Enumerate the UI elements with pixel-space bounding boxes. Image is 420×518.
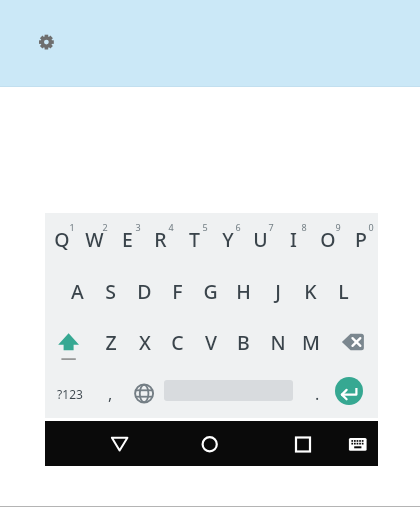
button[interactable]: I: [277, 217, 310, 261]
button[interactable]: [287, 430, 319, 458]
staticText: R: [154, 226, 167, 253]
staticText: J: [275, 278, 281, 305]
button[interactable]: O: [311, 217, 344, 261]
button[interactable]: A: [61, 265, 94, 317]
staticText: Z: [105, 329, 117, 356]
button[interactable]: ?123: [45, 368, 95, 420]
staticText: 5: [202, 221, 208, 233]
staticText: ,: [108, 383, 113, 405]
button[interactable]: W: [78, 217, 111, 261]
button[interactable]: Z: [94, 316, 127, 368]
staticText: T: [189, 226, 200, 253]
button[interactable]: D: [128, 265, 161, 317]
button[interactable]: [45, 316, 95, 368]
button[interactable]: M: [294, 316, 327, 368]
button[interactable]: [335, 377, 363, 405]
staticText: M: [302, 329, 320, 356]
staticText: A: [71, 278, 84, 305]
staticText: 2: [102, 221, 108, 233]
staticText: I: [290, 226, 297, 253]
button[interactable]: [327, 316, 377, 368]
staticText: 1: [69, 221, 75, 233]
staticText: U: [253, 226, 268, 253]
button[interactable]: S: [94, 265, 127, 317]
button[interactable]: J: [261, 265, 294, 317]
staticText: Q: [54, 226, 70, 253]
staticText: B: [237, 329, 250, 356]
button[interactable]: Y: [211, 217, 244, 261]
button[interactable]: P: [344, 217, 377, 261]
button[interactable]: X: [128, 316, 161, 368]
button[interactable]: [104, 430, 136, 458]
button[interactable]: B: [227, 316, 260, 368]
staticText: Y: [222, 226, 234, 253]
staticText: H: [236, 278, 251, 305]
button[interactable]: .: [298, 368, 336, 420]
button[interactable]: H: [227, 265, 260, 317]
button[interactable]: ,: [94, 368, 127, 420]
staticText: X: [139, 329, 151, 356]
button[interactable]: C: [161, 316, 194, 368]
button[interactable]: Q: [45, 217, 78, 261]
staticText: S: [105, 278, 116, 305]
staticText: G: [203, 278, 218, 305]
staticText: C: [171, 329, 184, 356]
staticText: ?123: [57, 386, 83, 402]
button[interactable]: K: [294, 265, 327, 317]
staticText: P: [355, 226, 367, 253]
staticText: W: [85, 226, 104, 253]
staticText: 6: [235, 221, 241, 233]
staticText: 0: [368, 221, 374, 233]
button[interactable]: T: [178, 217, 211, 261]
staticText: 3: [135, 221, 141, 233]
button[interactable]: N: [261, 316, 294, 368]
button[interactable]: R: [144, 217, 177, 261]
staticText: 8: [301, 221, 307, 233]
staticText: 4: [168, 221, 174, 233]
button[interactable]: U: [244, 217, 277, 261]
button[interactable]: E: [111, 217, 144, 261]
staticText: K: [304, 278, 317, 305]
staticText: D: [137, 278, 152, 305]
staticText: 9: [335, 221, 341, 233]
button[interactable]: [35, 31, 58, 54]
staticText: O: [320, 226, 336, 253]
button[interactable]: [348, 437, 368, 452]
button[interactable]: G: [194, 265, 227, 317]
staticText: .: [315, 383, 320, 405]
button[interactable]: L: [327, 265, 360, 317]
staticText: L: [338, 278, 349, 305]
button[interactable]: F: [161, 265, 194, 317]
button[interactable]: [128, 368, 161, 420]
staticText: 7: [268, 221, 274, 233]
staticText: E: [122, 226, 133, 253]
button[interactable]: [194, 430, 226, 458]
button[interactable]: V: [194, 316, 227, 368]
staticText: V: [205, 329, 217, 356]
staticText: F: [172, 278, 183, 305]
staticText: N: [270, 329, 286, 356]
